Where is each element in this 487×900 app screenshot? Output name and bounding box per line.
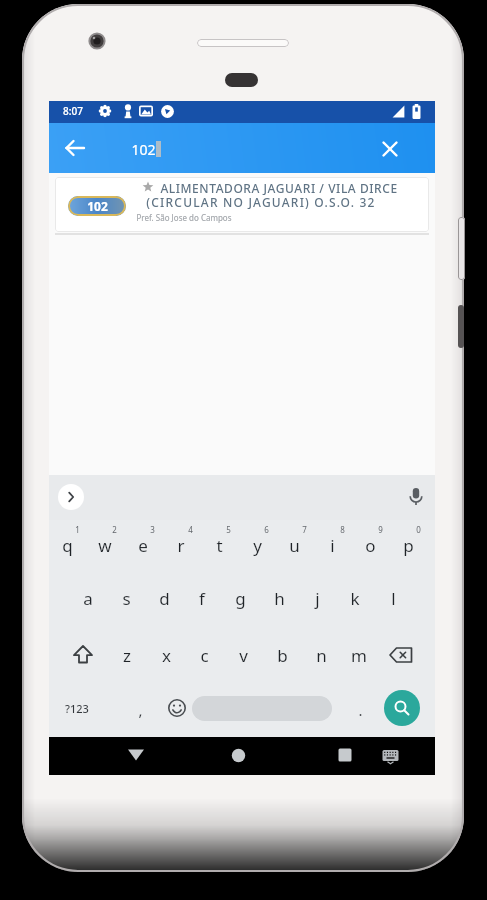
button[interactable]: h (262, 577, 296, 619)
button[interactable] (192, 696, 332, 721)
staticText: 9 (378, 524, 383, 535)
button[interactable]: c (187, 634, 221, 676)
staticText: 1 (75, 524, 80, 535)
staticText: 8 (340, 524, 345, 535)
button[interactable] (372, 131, 408, 167)
staticText: c (200, 644, 209, 667)
button[interactable] (71, 644, 95, 666)
button[interactable]: e (126, 524, 160, 566)
staticText: w (98, 534, 112, 557)
staticText: o (365, 534, 376, 557)
button[interactable]: a (71, 577, 105, 619)
button[interactable]: j (300, 577, 334, 619)
button[interactable]: q (50, 524, 84, 566)
staticText: f (199, 587, 205, 610)
button[interactable]: i (315, 524, 349, 566)
staticText: 6 (264, 524, 269, 535)
button[interactable] (167, 698, 187, 718)
button[interactable]: t (202, 524, 236, 566)
staticText: 7 (302, 524, 307, 535)
staticText: . (358, 700, 363, 720)
staticText: i (330, 534, 335, 557)
staticText: 3 (150, 524, 155, 535)
button[interactable] (384, 690, 420, 726)
staticText: x (162, 644, 171, 667)
staticText: 102 (87, 198, 108, 214)
staticText: v (239, 644, 248, 667)
button[interactable]: v (226, 634, 260, 676)
button[interactable]: y (240, 524, 274, 566)
button[interactable]: k (338, 577, 372, 619)
button[interactable]: r (164, 524, 198, 566)
button[interactable]: l (376, 577, 410, 619)
staticText: ?123 (65, 701, 89, 716)
button[interactable]: w (88, 524, 122, 566)
staticText: b (277, 644, 288, 667)
staticText: 2 (112, 524, 117, 535)
staticText: g (235, 587, 246, 610)
button[interactable]: , (127, 690, 153, 730)
button[interactable] (388, 645, 414, 665)
button[interactable]: 102 (55, 177, 429, 232)
button[interactable]: d (147, 577, 181, 619)
button[interactable]: m (342, 634, 376, 676)
staticText: ALIMENTADORA JAGUARI / VILA DIRCE (160, 180, 398, 195)
button[interactable] (127, 748, 145, 762)
staticText: u (289, 534, 300, 557)
button[interactable]: s (109, 577, 143, 619)
button[interactable] (382, 750, 399, 763)
staticText: 8:07 (63, 104, 83, 118)
staticText: Pref. São Jose do Campos (136, 212, 232, 223)
button[interactable]: u (277, 524, 311, 566)
button[interactable] (231, 748, 246, 763)
button[interactable]: z (110, 634, 144, 676)
staticText: z (123, 644, 131, 667)
staticText: j (315, 587, 320, 610)
button[interactable]: g (223, 577, 257, 619)
staticText: r (177, 534, 185, 557)
staticText: k (350, 587, 360, 610)
staticText: l (391, 587, 396, 610)
button[interactable]: . (347, 690, 373, 730)
staticText: d (159, 587, 170, 610)
staticText: 5 (226, 524, 231, 535)
staticText: t (216, 534, 223, 557)
staticText: , (138, 700, 143, 720)
button[interactable]: p (391, 524, 425, 566)
staticText: n (316, 644, 327, 667)
staticText: s (122, 587, 131, 610)
button[interactable] (57, 130, 93, 166)
staticText: h (274, 587, 285, 610)
button[interactable]: n (304, 634, 338, 676)
staticText: q (62, 534, 73, 557)
staticText: e (138, 534, 148, 557)
button[interactable] (58, 484, 84, 510)
staticText: (CIRCULAR NO JAGUARI) O.S.O. 32 (146, 194, 376, 209)
staticText: a (83, 587, 93, 610)
staticText: m (351, 644, 367, 667)
button[interactable]: ?123 (55, 688, 99, 728)
button[interactable]: b (265, 634, 299, 676)
staticText: p (403, 534, 414, 557)
staticText: 4 (188, 524, 193, 535)
button[interactable] (338, 748, 352, 762)
staticText: 102 (131, 140, 156, 159)
button[interactable]: f (185, 577, 219, 619)
staticText: y (253, 534, 262, 557)
button[interactable]: o (353, 524, 387, 566)
button[interactable]: x (149, 634, 183, 676)
staticText: 0 (416, 524, 421, 535)
button[interactable] (407, 486, 425, 508)
